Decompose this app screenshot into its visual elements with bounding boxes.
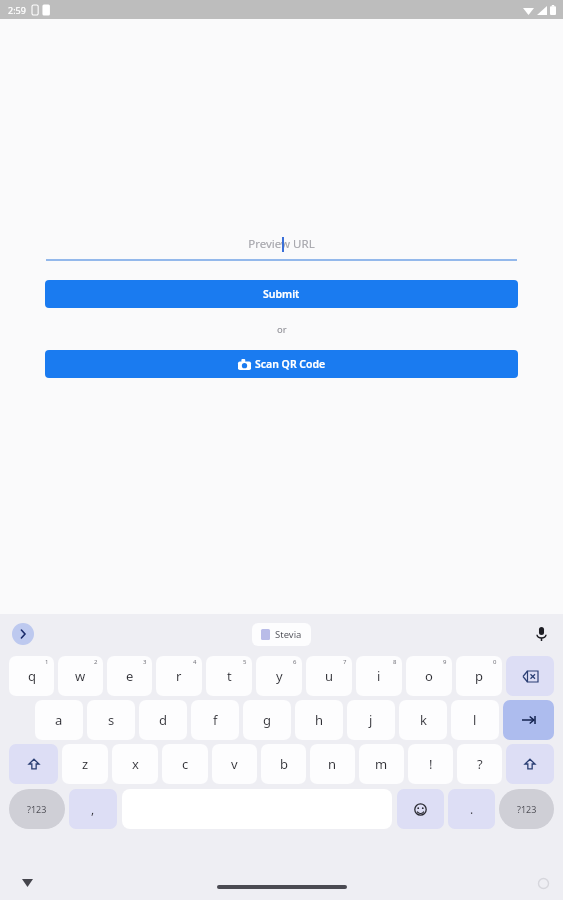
button[interactable]: Preview URL <box>46 225 517 261</box>
staticText: h <box>315 711 324 729</box>
staticText: l <box>473 711 477 729</box>
staticText: a <box>55 711 63 729</box>
staticText: x <box>132 755 139 773</box>
button[interactable]: f <box>191 700 239 740</box>
staticText: j <box>369 711 373 729</box>
button[interactable]: t <box>206 656 252 696</box>
button[interactable]: s <box>87 700 135 740</box>
button[interactable]: n <box>310 744 355 784</box>
staticText: 0 <box>493 658 497 666</box>
button[interactable]: Scan QR Code <box>45 350 518 378</box>
button[interactable]: . <box>448 789 495 829</box>
staticText: m <box>375 755 388 773</box>
staticText: 9 <box>443 658 447 666</box>
staticText: Submit <box>263 287 300 301</box>
staticText: o <box>425 667 433 685</box>
button[interactable]: g <box>243 700 291 740</box>
button[interactable]: Hide keyboard <box>17 873 37 893</box>
staticText: u <box>325 667 334 685</box>
staticText: 5 <box>243 658 247 666</box>
button[interactable]: ? <box>457 744 502 784</box>
button[interactable]: e <box>107 656 152 696</box>
staticText: c <box>182 755 189 773</box>
button[interactable]: Recents <box>538 878 549 889</box>
staticText: . <box>470 801 474 817</box>
staticText: 8 <box>393 658 397 666</box>
staticText: 7 <box>343 658 347 666</box>
button[interactable]: Shift <box>506 744 554 784</box>
staticText: k <box>420 711 427 729</box>
staticText: b <box>280 755 288 773</box>
button[interactable]: Home <box>217 885 347 889</box>
button[interactable]: ?123 <box>9 789 65 829</box>
staticText: or <box>277 323 287 336</box>
button[interactable]: , <box>69 789 117 829</box>
button[interactable]: Shift <box>9 744 58 784</box>
button[interactable]: ! <box>408 744 453 784</box>
staticText: z <box>82 755 89 773</box>
staticText: g <box>263 711 271 729</box>
staticText: Scan QR Code <box>255 357 326 371</box>
staticText: ?123 <box>517 803 537 815</box>
staticText: e <box>126 667 134 685</box>
button[interactable]: y <box>256 656 302 696</box>
staticText: 6 <box>293 658 297 666</box>
button[interactable]: x <box>112 744 158 784</box>
staticText: v <box>231 755 238 773</box>
button[interactable]: Submit <box>45 280 518 308</box>
button[interactable]: ?123 <box>499 789 554 829</box>
button[interactable]: c <box>162 744 208 784</box>
staticText: i <box>377 667 381 685</box>
staticText: w <box>75 667 86 685</box>
staticText: Preview URL <box>248 236 315 252</box>
button[interactable]: q <box>9 656 54 696</box>
button[interactable]: p <box>456 656 502 696</box>
button[interactable]: Expand suggestions <box>12 623 34 645</box>
staticText: y <box>276 667 283 685</box>
button[interactable]: a <box>35 700 83 740</box>
staticText: r <box>176 667 182 685</box>
staticText: s <box>108 711 115 729</box>
button[interactable]: j <box>347 700 395 740</box>
button[interactable]: i <box>356 656 402 696</box>
staticText: p <box>475 667 483 685</box>
button[interactable]: l <box>451 700 499 740</box>
button[interactable]: u <box>306 656 352 696</box>
button[interactable]: Voice input <box>531 624 551 644</box>
button[interactable]: k <box>399 700 447 740</box>
button[interactable]: z <box>62 744 108 784</box>
staticText: Stevia <box>275 628 302 641</box>
staticText: q <box>28 667 36 685</box>
button[interactable]: Emoji <box>397 789 444 829</box>
staticText: f <box>213 711 218 729</box>
staticText: 1 <box>45 658 49 666</box>
button[interactable]: o <box>406 656 452 696</box>
button[interactable]: d <box>139 700 187 740</box>
staticText: n <box>328 755 337 773</box>
staticText: 2 <box>94 658 98 666</box>
staticText: 4 <box>193 658 197 666</box>
button[interactable]: w <box>58 656 103 696</box>
staticText: ? <box>477 755 483 773</box>
button[interactable]: Backspace <box>506 656 554 696</box>
staticText: 2:59 <box>8 4 26 16</box>
button[interactable]: Stevia <box>261 628 302 641</box>
staticText: ! <box>429 755 433 773</box>
staticText: 3 <box>143 658 147 666</box>
button[interactable]: v <box>212 744 257 784</box>
button[interactable]: r <box>156 656 202 696</box>
staticText: , <box>91 801 95 817</box>
button[interactable]: h <box>295 700 343 740</box>
button[interactable]: Tab <box>503 700 554 740</box>
button[interactable]: m <box>359 744 404 784</box>
staticText: ?123 <box>27 803 47 815</box>
staticText: t <box>227 667 232 685</box>
staticText: d <box>159 711 167 729</box>
button[interactable]: b <box>261 744 306 784</box>
